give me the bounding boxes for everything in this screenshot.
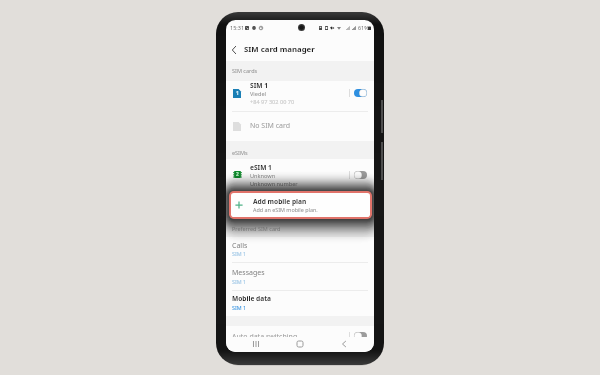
staticText: Mobile data bbox=[232, 294, 272, 303]
staticText: SIM 1 bbox=[232, 304, 247, 311]
button[interactable] bbox=[226, 287, 374, 314]
staticText: Unknown number bbox=[250, 180, 298, 188]
staticText: 61% bbox=[358, 24, 369, 31]
button[interactable]: Home bbox=[292, 336, 308, 352]
staticText: 15:31 bbox=[230, 24, 245, 31]
button[interactable] bbox=[226, 160, 374, 190]
button[interactable]: Back bbox=[336, 336, 352, 352]
staticText: SIM card manager bbox=[244, 44, 315, 55]
staticText: SIM 1 bbox=[250, 81, 268, 90]
button[interactable] bbox=[226, 235, 374, 262]
button[interactable]: Turn off bbox=[354, 89, 367, 97]
button[interactable]: Recent apps bbox=[248, 336, 264, 352]
staticText: Calls bbox=[232, 241, 248, 251]
staticText: +84 97 302 00 70 bbox=[250, 98, 295, 106]
staticText: No SIM card bbox=[250, 121, 291, 131]
staticText: eSIM 1 bbox=[250, 163, 272, 172]
staticText: Messages bbox=[232, 268, 265, 278]
staticText: eSIMs bbox=[232, 149, 248, 156]
staticText: Unknown bbox=[250, 172, 276, 180]
staticText: Preferred SIM card bbox=[232, 225, 281, 232]
button[interactable] bbox=[226, 112, 374, 140]
staticText: Add an eSIM mobile plan. bbox=[253, 206, 318, 213]
button[interactable] bbox=[226, 81, 374, 111]
staticText: 2 bbox=[236, 171, 239, 178]
staticText: Viedel bbox=[250, 90, 266, 98]
staticText: SIM 1 bbox=[232, 250, 247, 257]
button[interactable]: Turn on bbox=[354, 332, 367, 340]
button[interactable]: Turn on bbox=[354, 171, 367, 179]
button[interactable]: Navigate up bbox=[226, 42, 242, 58]
staticText: Add mobile plan bbox=[253, 197, 307, 206]
button[interactable] bbox=[226, 326, 374, 342]
button[interactable]: Add mobile plan bbox=[231, 193, 370, 217]
staticText: Auto data switching bbox=[232, 332, 298, 342]
staticText: 1 bbox=[236, 90, 239, 97]
staticText: SIM 1 bbox=[232, 278, 247, 285]
button[interactable] bbox=[226, 262, 374, 289]
staticText: SIM cards bbox=[232, 67, 258, 74]
